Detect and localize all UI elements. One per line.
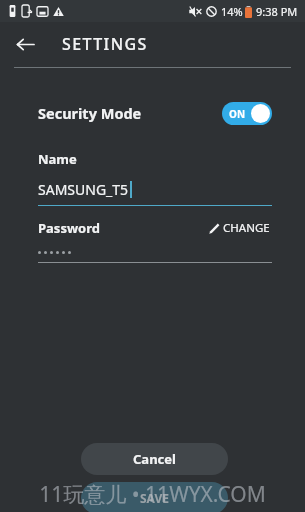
staticText: SAVE [140, 490, 169, 506]
button[interactable]: SAVE [81, 482, 228, 512]
staticText: SAMSUNG_T5 [38, 180, 129, 199]
staticText: 11玩意儿 • 11WYX.COM [0, 480, 305, 509]
staticText: 14% [221, 4, 243, 19]
staticText: CHANGE [223, 220, 270, 236]
button[interactable]: Security Mode on [222, 102, 272, 125]
button[interactable]: CHANGE [207, 218, 272, 238]
button[interactable]: Cancel [81, 443, 228, 475]
staticText: Password [38, 219, 100, 237]
button[interactable]: Back [8, 27, 42, 61]
staticText: Name [38, 150, 77, 168]
staticText: 9:38 PM [256, 4, 298, 19]
staticText: Cancel [133, 450, 176, 468]
staticText: Security Mode [38, 103, 142, 123]
staticText: SETTINGS [62, 33, 148, 55]
staticText: ON [229, 107, 246, 121]
